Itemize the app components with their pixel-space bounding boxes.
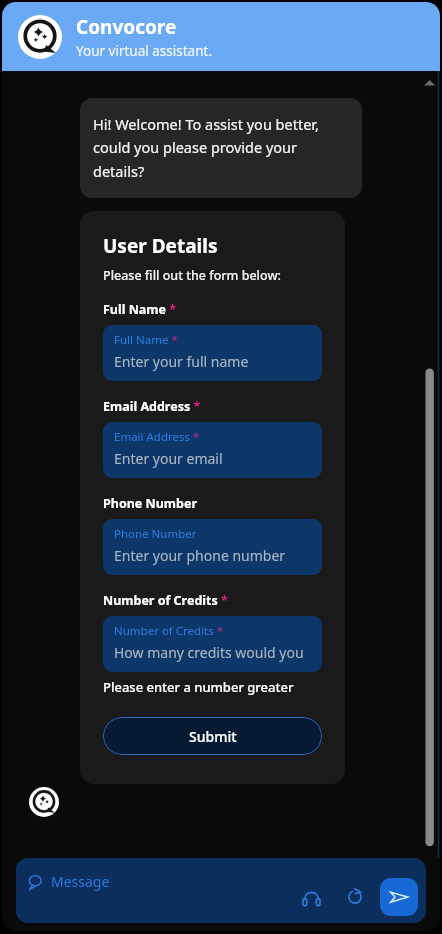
staticText: Enter your full name xyxy=(114,352,249,371)
staticText: Message xyxy=(51,872,110,891)
staticText: Email Address * xyxy=(103,398,201,415)
staticText: Please fill out the form below: xyxy=(103,267,281,284)
staticText: Full Name * xyxy=(103,301,177,318)
button[interactable]: Reset conversation xyxy=(338,880,372,914)
staticText: Number of Credits * xyxy=(103,592,228,609)
staticText: Enter your email xyxy=(114,449,223,468)
button[interactable]: Email Address * xyxy=(103,422,322,478)
staticText: How many credits would you li xyxy=(114,643,314,662)
staticText: Email Address * xyxy=(114,429,200,445)
staticText: Number of Credits * xyxy=(114,623,224,639)
staticText: Full Name * xyxy=(114,332,178,348)
staticText: Submit xyxy=(189,727,237,746)
staticText: User Details xyxy=(103,233,218,259)
staticText: Hi! Welcome! To assist you better, could… xyxy=(93,114,349,182)
staticText: Enter your phone number xyxy=(114,546,286,565)
button[interactable]: Submit xyxy=(103,717,322,755)
staticText: Convocore xyxy=(76,14,177,40)
staticText: Please enter a number greater than 0 xyxy=(103,678,322,696)
staticText: Phone Number xyxy=(103,495,197,512)
button[interactable]: Message xyxy=(28,872,110,891)
button[interactable]: Number of Credits * xyxy=(103,616,322,672)
button[interactable]: Voice mode xyxy=(294,880,328,914)
staticText: Your virtual assistant. xyxy=(76,42,212,60)
button[interactable]: Phone Number xyxy=(103,519,322,575)
staticText: Phone Number xyxy=(114,526,197,542)
button[interactable]: Send xyxy=(380,878,418,916)
button[interactable]: Full Name * xyxy=(103,325,322,381)
